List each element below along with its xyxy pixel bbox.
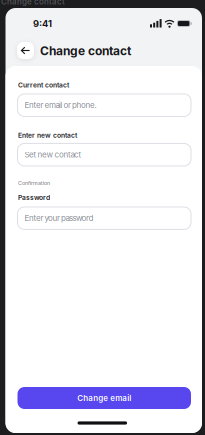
staticText: Set new contact xyxy=(24,150,81,159)
button[interactable]: Back xyxy=(17,42,34,59)
staticText: Change email xyxy=(77,393,131,403)
staticText: Enter new contact xyxy=(18,131,77,139)
staticText: Confirmation xyxy=(18,180,50,186)
staticText: 9:41 xyxy=(33,18,52,29)
button[interactable]: Set new contact xyxy=(17,143,191,166)
staticText: Change contact xyxy=(40,44,131,58)
button[interactable]: Enter your password xyxy=(17,207,191,229)
staticText: Change contact xyxy=(1,0,65,6)
staticText: Enter email or phone. xyxy=(24,100,96,110)
button[interactable]: Enter email or phone. xyxy=(17,94,191,116)
staticText: Enter your password xyxy=(24,213,93,223)
staticText: Current contact xyxy=(18,81,69,89)
button[interactable]: Change email xyxy=(17,387,191,409)
staticText: Password xyxy=(18,194,50,201)
